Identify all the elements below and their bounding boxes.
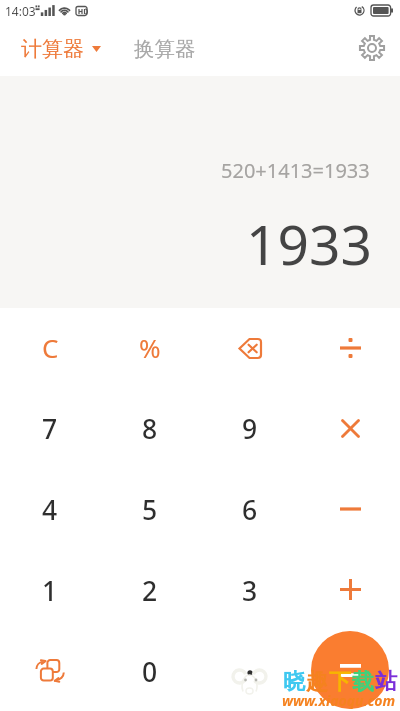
button[interactable]: 3 xyxy=(200,549,300,630)
staticText: 载 xyxy=(352,668,375,696)
button[interactable]: 6 xyxy=(200,468,300,549)
button[interactable]: 5 xyxy=(100,468,200,549)
button[interactable]: Plus xyxy=(300,549,400,630)
button[interactable]: 0 xyxy=(100,630,200,711)
other: Unit converter xyxy=(36,658,64,684)
staticText: 520+1413=1933 xyxy=(221,157,370,184)
button[interactable]: Clear xyxy=(0,308,100,388)
staticText: 1 xyxy=(42,573,58,609)
other: Backspace xyxy=(238,338,262,359)
staticText: 7 xyxy=(42,411,58,447)
button[interactable]: 2 xyxy=(100,549,200,630)
button[interactable]: 9 xyxy=(200,388,300,468)
staticText: 1933 xyxy=(246,206,372,281)
staticText: 计算器 xyxy=(21,36,84,62)
staticText: 4 xyxy=(42,492,58,528)
button[interactable]: Percent xyxy=(100,308,200,388)
button[interactable]: 计算器 xyxy=(21,36,101,62)
button[interactable]: 8 xyxy=(100,388,200,468)
button[interactable]: Decimal point xyxy=(200,630,300,711)
staticText: 下 xyxy=(329,668,352,696)
button[interactable]: Backspace xyxy=(200,308,300,388)
staticText: www.xiaoqu.com xyxy=(282,691,396,710)
staticText: 14:03 xyxy=(5,3,36,19)
button[interactable]: 换算器 xyxy=(134,36,196,62)
button[interactable]: 1 xyxy=(0,549,100,630)
button[interactable]: Settings xyxy=(352,28,392,68)
staticText: 5 xyxy=(142,492,158,528)
staticText: 6 xyxy=(242,492,258,528)
staticText: 0 xyxy=(142,654,158,690)
staticText: % xyxy=(139,330,161,365)
staticText: 晓 xyxy=(283,668,306,696)
staticText: 站 xyxy=(375,668,398,696)
staticText: 趣 xyxy=(306,668,329,696)
button[interactable]: Minus xyxy=(300,468,400,549)
button[interactable]: Equals xyxy=(300,630,400,711)
button[interactable]: Unit converter xyxy=(0,630,100,711)
staticText: 9 xyxy=(242,411,258,447)
staticText: C xyxy=(42,330,59,365)
button[interactable]: Divide xyxy=(300,308,400,388)
button[interactable]: Multiply xyxy=(300,388,400,468)
staticText: 3 xyxy=(242,573,258,609)
staticText: 2 xyxy=(142,573,158,609)
button[interactable]: 7 xyxy=(0,388,100,468)
button[interactable]: Equals xyxy=(311,631,389,709)
staticText: 8 xyxy=(142,411,158,447)
button[interactable]: 4 xyxy=(0,468,100,549)
staticText: 换算器 xyxy=(134,36,196,62)
